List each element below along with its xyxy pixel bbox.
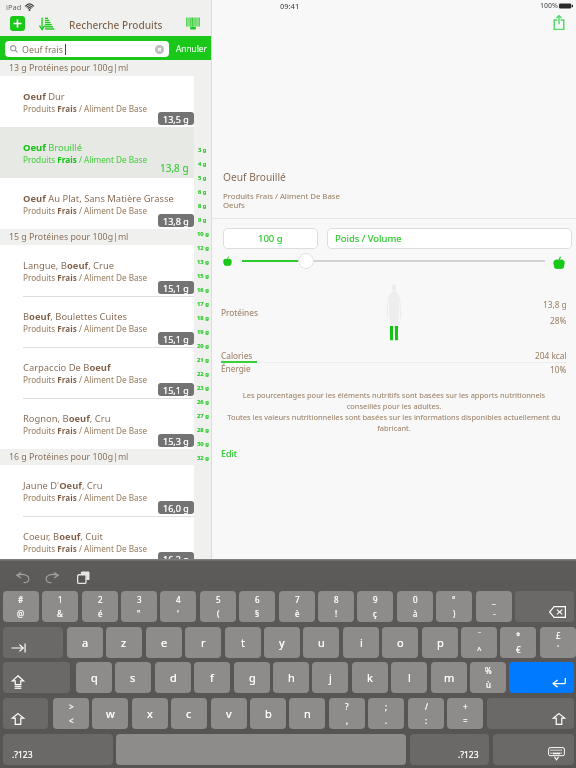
button[interactable]: / [408,698,444,729]
button[interactable]: i [343,627,379,658]
button[interactable]: f [194,662,230,693]
button[interactable]: p [422,627,458,658]
button[interactable]: d [155,662,191,693]
button[interactable]: 4 g [194,157,211,171]
button[interactable]: Chiffres [3,734,113,765]
button[interactable]: e [146,627,182,658]
button[interactable]: Oeuf Brouillé [0,127,211,178]
button[interactable]: Retour arrière [515,591,574,622]
button[interactable]: Retour [509,662,574,693]
button[interactable]: Effacer [155,45,164,54]
button[interactable]: Verrouillage majuscules [3,662,70,693]
button[interactable]: 21 g [194,353,211,367]
button[interactable]: 7 [279,591,315,622]
button[interactable]: k [352,662,388,693]
button[interactable]: 3 g [194,143,211,157]
button[interactable]: q [76,662,112,693]
button[interactable]: 26 g [194,395,211,409]
button[interactable]: Copier [73,567,93,587]
button[interactable]: 12 g [194,241,211,255]
button[interactable]: Coeur, Boeuf, Cuit [0,516,211,559]
button[interactable]: ° [436,591,472,622]
button[interactable]: 1 [42,591,78,622]
button[interactable]: Code barre [186,17,200,30]
button[interactable]: 32 g [194,451,211,465]
button[interactable]: Partager [547,10,571,34]
button[interactable]: Carpaccio De Boeuf [0,347,211,398]
button[interactable]: Trier [39,16,56,30]
button[interactable]: Quantité [298,253,314,269]
button[interactable]: Majuscule [3,698,48,729]
button[interactable]: 22 g [194,367,211,381]
button[interactable]: j [312,662,348,693]
button[interactable]: 6 g [194,185,211,199]
button[interactable]: > [53,698,89,729]
button[interactable]: 10 g [194,227,211,241]
button[interactable]: 27 g [194,409,211,423]
button[interactable]: Edit [221,447,238,459]
button[interactable]: 15 g [194,269,211,283]
button[interactable]: 9 [357,591,393,622]
button[interactable]: 30 g [194,437,211,451]
button[interactable]: 18 g [194,311,211,325]
button[interactable]: ? [329,698,365,729]
button[interactable]: 6 [239,591,275,622]
button[interactable]: Rognon, Boeuf, Cru [0,398,211,449]
button[interactable]: Majuscule [487,698,574,729]
button[interactable]: 13 g [194,255,211,269]
button[interactable]: 5 [200,591,236,622]
button[interactable]: * [500,627,536,658]
button[interactable]: + [447,698,483,729]
button[interactable]: t [225,627,261,658]
button[interactable]: Rétablir [42,567,62,587]
button[interactable]: ; [368,698,404,729]
button[interactable]: 9 g [194,213,211,227]
button[interactable]: 0 [397,591,433,622]
button[interactable]: Poids / Volume [327,228,572,249]
button[interactable]: 23 g [194,381,211,395]
button[interactable]: 19 g [194,325,211,339]
button[interactable]: 17 g [194,297,211,311]
button[interactable]: 8 g [194,199,211,213]
button[interactable]: % [470,662,506,693]
button[interactable]: w [92,698,128,729]
button[interactable]: 2 [82,591,118,622]
button[interactable]: y [264,627,300,658]
button[interactable]: l [391,662,427,693]
button[interactable]: 16 g [194,283,211,297]
button[interactable]: Ajouter [10,16,25,31]
button[interactable]: Langue, Boeuf, Crue [0,245,211,296]
button[interactable]: ¨ [461,627,497,658]
button[interactable]: 8 [318,591,354,622]
button[interactable]: Annuler [12,567,32,587]
button[interactable]: Masquer le clavier [493,734,574,765]
button[interactable]: 28 g [194,423,211,437]
button[interactable]: c [171,698,207,729]
button[interactable]: _ [476,591,512,622]
button[interactable]: 20 g [194,339,211,353]
button[interactable]: Oeuf frais [5,41,169,57]
button[interactable]: Oeuf Au Plat, Sans Matière Grasse [0,178,211,229]
button[interactable]: # [3,591,39,622]
button[interactable]: Annuler [171,36,211,60]
button[interactable]: 4 [160,591,196,622]
button[interactable]: u [303,627,339,658]
button[interactable]: n [289,698,325,729]
button[interactable]: Jaune D'Oeuf, Cru [0,465,211,516]
button[interactable]: Oeuf Dur [0,76,211,127]
button[interactable]: z [106,627,142,658]
button[interactable]: Chiffres [410,734,489,765]
button[interactable]: m [431,662,467,693]
button[interactable]: s [115,662,151,693]
button[interactable]: Boeuf, Boulettes Cuites [0,296,211,347]
button[interactable]: 100 g [223,228,318,249]
button[interactable]: v [211,698,247,729]
button[interactable]: Tabulation [3,627,63,658]
button[interactable]: o [382,627,418,658]
button[interactable]: b [250,698,286,729]
button[interactable]: £ [540,627,576,658]
button[interactable]: 5 g [194,171,211,185]
button[interactable]: h [273,662,309,693]
button[interactable]: 3 [121,591,157,622]
